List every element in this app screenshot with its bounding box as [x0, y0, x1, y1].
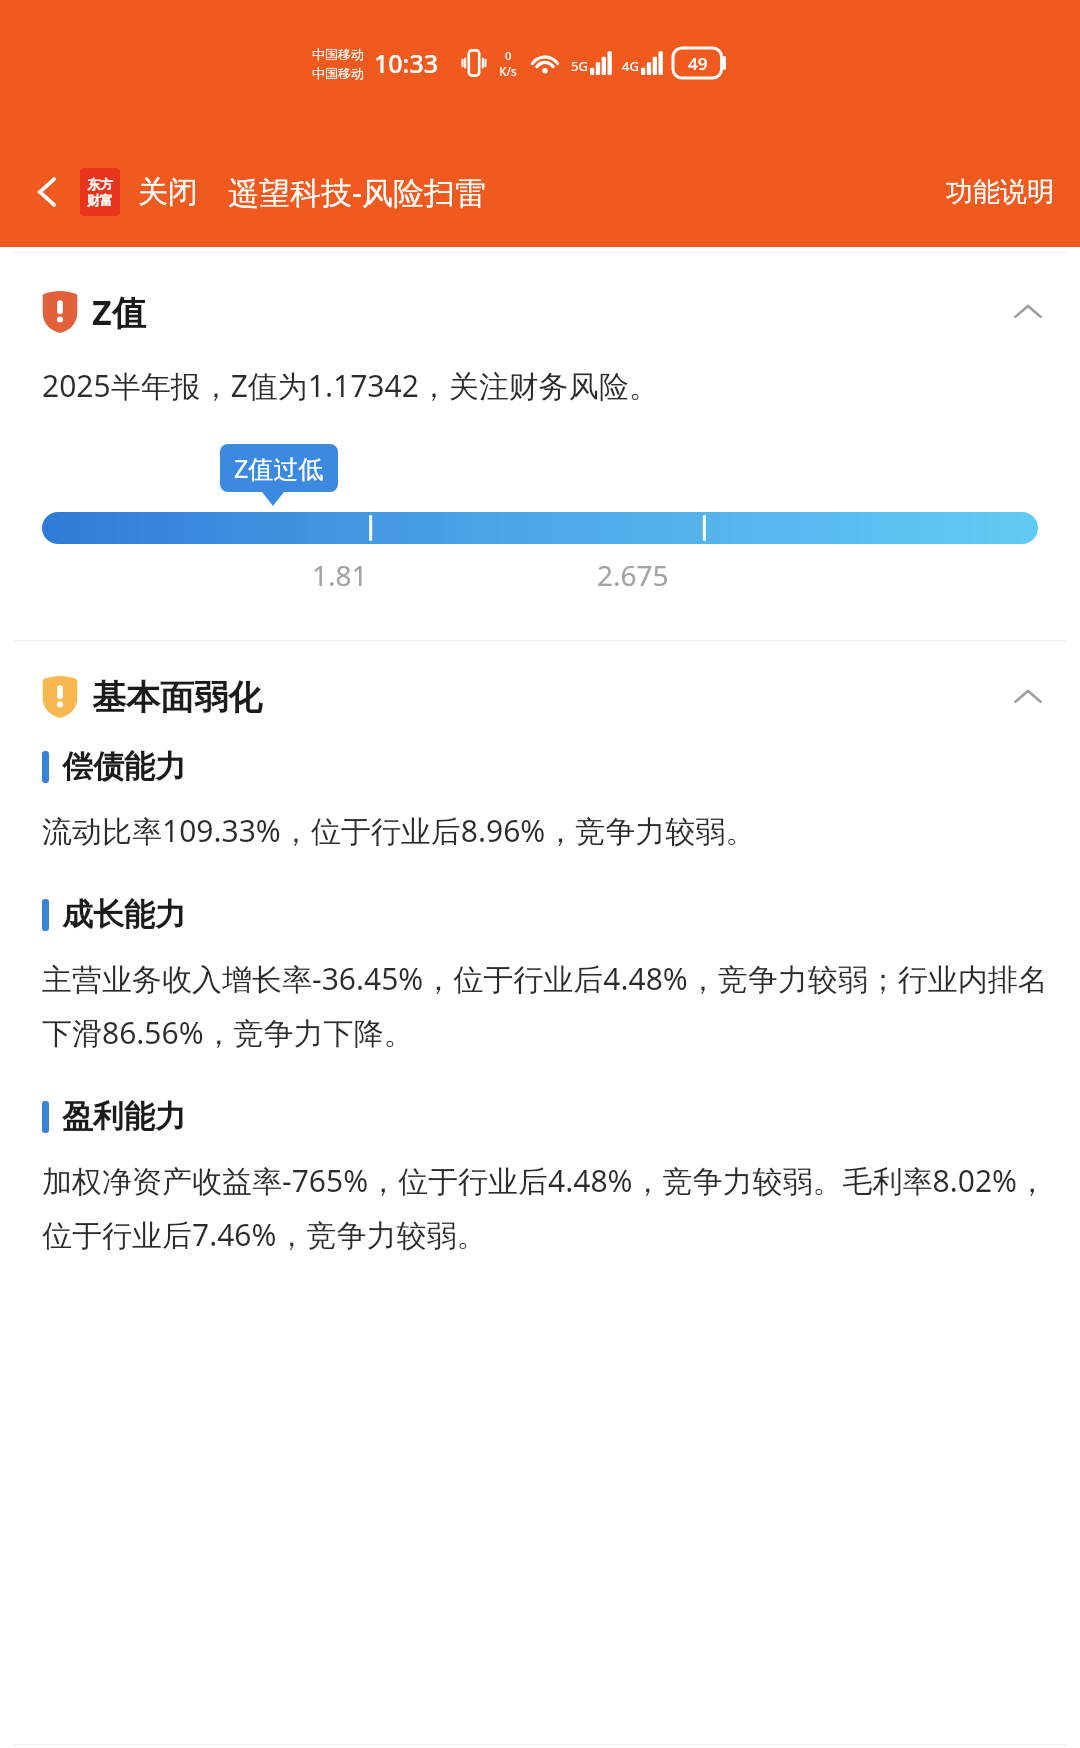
staticText: 功能说明: [946, 175, 1054, 209]
staticText: 10:33: [374, 46, 439, 80]
staticText: 0: [505, 48, 512, 63]
staticText: 2.675: [597, 556, 669, 594]
staticText: 基本面弱化: [92, 676, 262, 719]
staticText: 4G: [622, 57, 639, 75]
staticText: 2025半年报，Z值为1.17342，关注财务风险。: [42, 365, 659, 406]
staticText: 财富: [87, 192, 113, 208]
staticText: 1.81: [312, 556, 368, 594]
button[interactable]: 基本面弱化: [0, 675, 1080, 719]
staticText: 中国移动: [312, 65, 364, 81]
staticText: 49: [688, 52, 708, 75]
other: Collapse: [1006, 290, 1050, 334]
staticText: 东方: [87, 176, 113, 192]
button[interactable]: 功能说明: [946, 175, 1054, 209]
staticText: 偿债能力: [62, 747, 186, 786]
button[interactable]: Back: [20, 164, 76, 220]
staticText: 盈利能力: [62, 1097, 186, 1136]
staticText: 成长能力: [62, 895, 186, 934]
button[interactable]: Z值: [0, 289, 1080, 335]
staticText: K/s: [499, 63, 517, 79]
staticText: 流动比率109.33%，位于行业后8.96%，竞争力较弱。: [42, 810, 756, 851]
staticText: Z值过低: [234, 451, 324, 485]
staticText: 5G: [571, 57, 588, 75]
staticText: 中国移动: [312, 46, 364, 62]
staticText: 加权净资产收益率-765%，位于行业后4.48%，竞争力较弱。毛利率8.02%，…: [42, 1160, 1048, 1255]
button[interactable]: 关闭: [138, 173, 198, 211]
staticText: Z值: [92, 289, 146, 335]
staticText: 遥望科技-风险扫雷: [228, 171, 486, 213]
other: Collapse: [1006, 675, 1050, 719]
staticText: 关闭: [138, 173, 198, 211]
staticText: 主营业务收入增长率-36.45%，位于行业后4.48%，竞争力较弱；行业内排名下…: [42, 958, 1048, 1053]
